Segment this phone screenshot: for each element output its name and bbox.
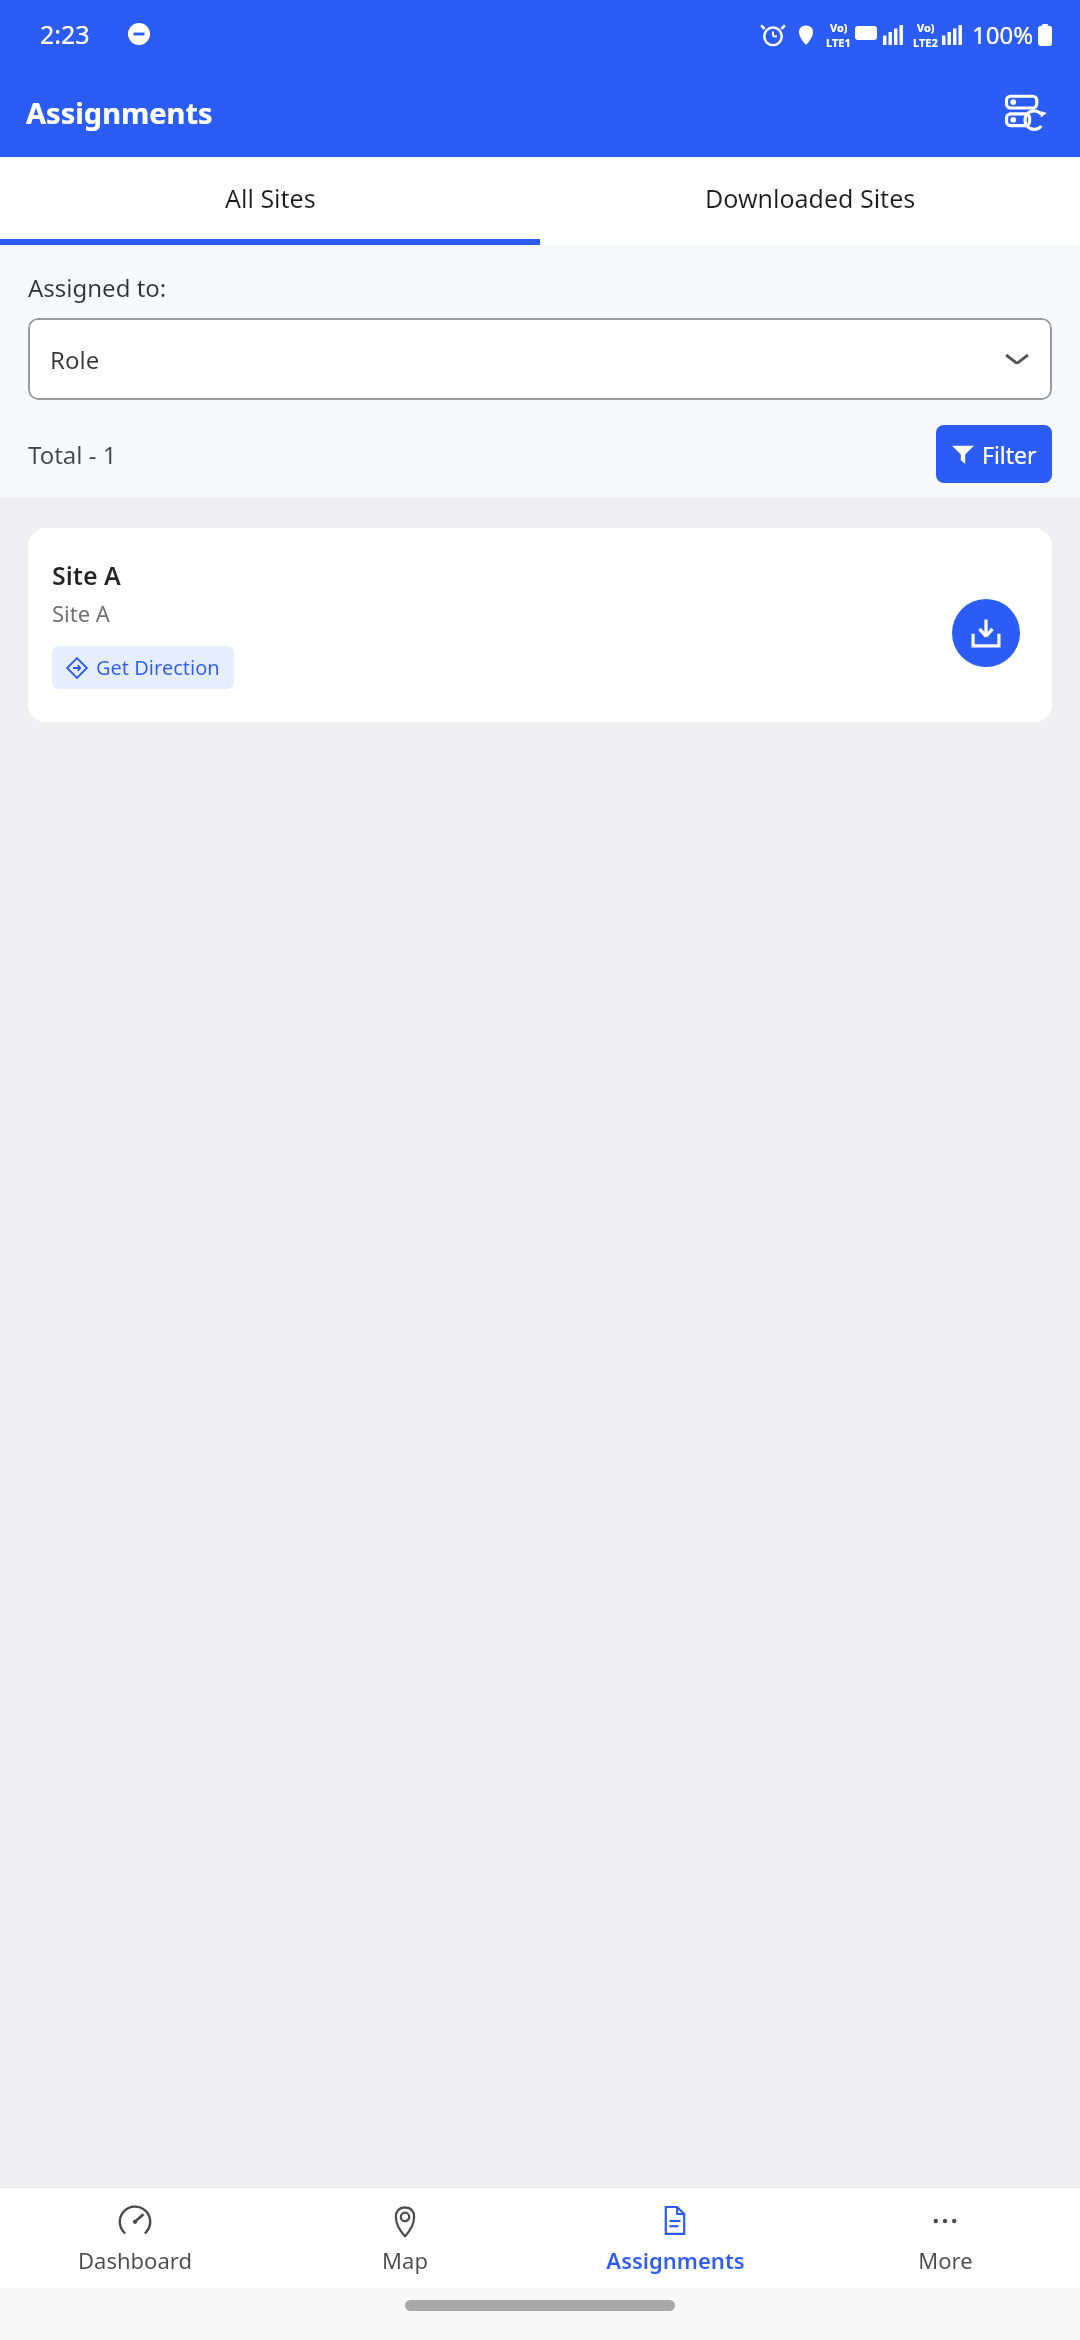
button[interactable]: Downloaded Sites — [540, 157, 1080, 239]
staticText: Filter — [982, 439, 1037, 470]
staticText: Vo) — [830, 20, 848, 35]
button[interactable]: Get Direction — [52, 646, 234, 689]
staticText: Role — [50, 343, 1004, 376]
button[interactable]: Filter — [936, 425, 1052, 483]
button[interactable]: Map — [270, 2188, 540, 2288]
staticText: Dashboard — [78, 2245, 192, 2275]
staticText: Get Direction — [96, 654, 220, 681]
staticText: 100% — [972, 18, 1034, 51]
staticText: Map — [382, 2245, 428, 2275]
button[interactable]: Dashboard — [0, 2188, 270, 2288]
staticText: LTE2 — [913, 35, 938, 50]
staticText: Downloaded Sites — [705, 181, 916, 215]
button[interactable]: Site A — [28, 528, 1052, 722]
staticText: More — [918, 2245, 973, 2275]
staticText: Vo) — [917, 20, 935, 35]
staticText: Assigned to: — [28, 271, 167, 304]
staticText: Total - 1 — [28, 438, 936, 471]
staticText: Assignments — [26, 93, 213, 132]
button[interactable]: More — [810, 2188, 1080, 2288]
staticText: 2:23 — [40, 17, 90, 51]
staticText: Site A — [52, 558, 121, 592]
staticText: Site A — [52, 598, 110, 628]
staticText: Assignments — [606, 2245, 745, 2275]
button[interactable]: Sync data — [996, 84, 1054, 142]
staticText: All Sites — [225, 181, 316, 215]
button[interactable]: Download site — [952, 599, 1020, 667]
button[interactable]: Assignments — [540, 2188, 810, 2288]
button[interactable]: All Sites — [0, 157, 540, 239]
button[interactable]: Role — [28, 318, 1052, 400]
staticText: LTE1 — [826, 35, 851, 50]
